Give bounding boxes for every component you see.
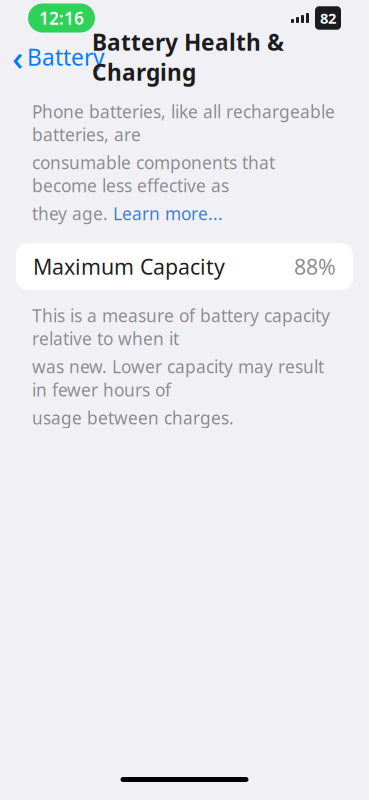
staticText: was new. Lower capacity may result in fe… (32, 355, 324, 401)
staticText: they age. (32, 202, 113, 225)
button[interactable]: Maximum Capacity (16, 243, 353, 290)
staticText: Maximum Capacity (33, 252, 225, 281)
staticText: Battery (27, 42, 105, 72)
staticText: consumable components that become less e… (32, 151, 275, 197)
staticText: Phone batteries, like all rechargeable b… (32, 100, 335, 146)
staticText: 12:16 (39, 6, 84, 29)
staticText: usage between charges. (32, 406, 234, 429)
staticText: 88% (294, 252, 336, 281)
staticText: This is a measure of battery capacity re… (32, 304, 330, 350)
staticText: ‹ (12, 34, 23, 80)
staticText: Battery Health & Charging (92, 27, 284, 87)
staticText: past 80% until you need to use it. (32, 763, 304, 786)
staticText: 82 (320, 8, 336, 28)
button[interactable]: ‹ (0, 30, 105, 84)
button[interactable]: Learn more... (113, 202, 223, 225)
staticText: Learn more... (113, 202, 223, 225)
